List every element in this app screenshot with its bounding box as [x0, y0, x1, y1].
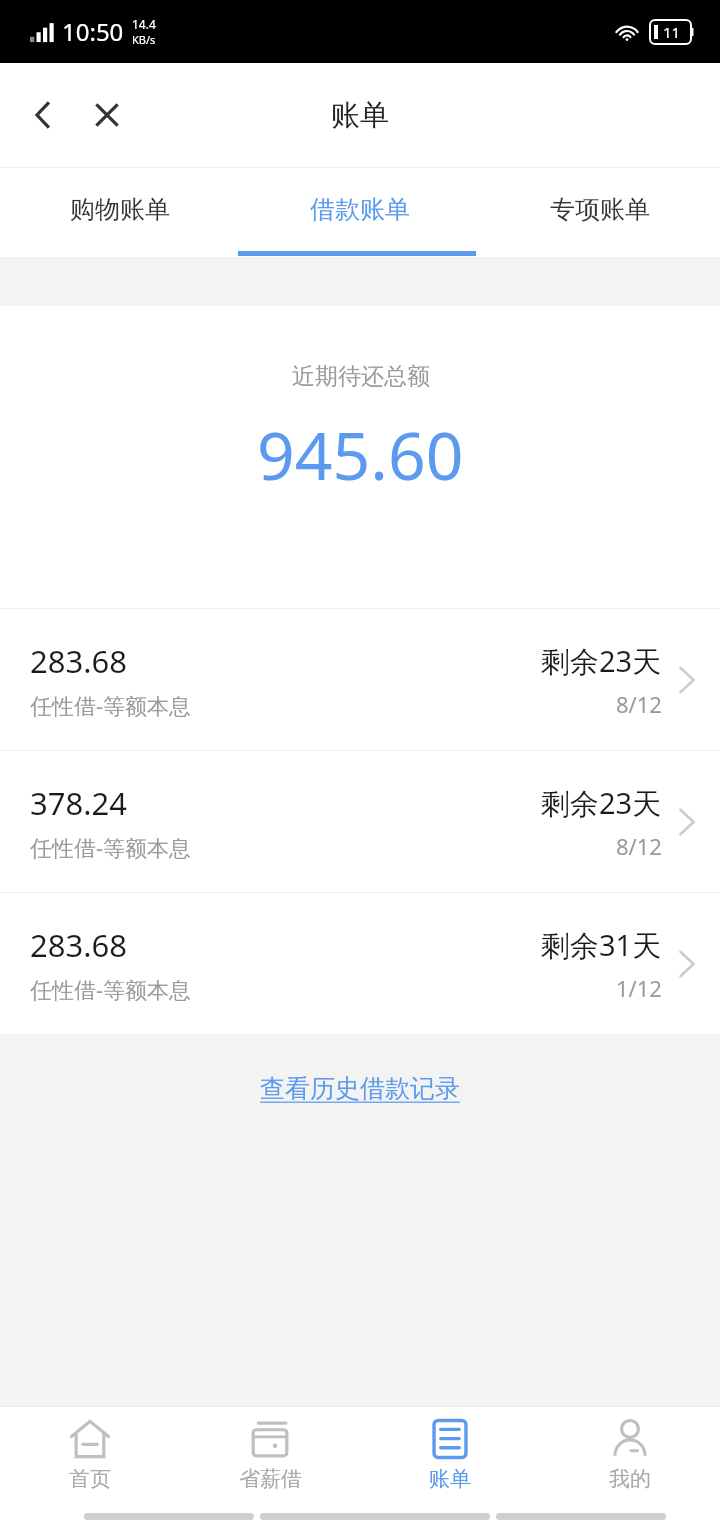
button[interactable]: Close	[78, 86, 136, 144]
staticText: 378.24	[30, 782, 127, 824]
staticText: 任性借-等额本息	[30, 974, 192, 1004]
staticText: 283.68	[30, 924, 127, 966]
staticText: 945.60	[257, 409, 464, 499]
staticText: KB/s	[132, 32, 156, 47]
staticText: 购物账单	[70, 194, 170, 225]
staticText: 账单	[331, 97, 389, 134]
staticText: 查看历史借款记录	[260, 1073, 460, 1104]
button[interactable]: 查看历史借款记录	[0, 1034, 720, 1142]
staticText: 我的	[609, 1466, 651, 1492]
staticText: 8/12	[616, 689, 662, 719]
staticText: 任性借-等额本息	[30, 832, 192, 862]
staticText: 省薪借	[239, 1466, 302, 1492]
staticText: 剩余23天	[541, 783, 662, 823]
button[interactable]: 我的	[540, 1407, 720, 1502]
staticText: 专项账单	[550, 194, 650, 225]
staticText: 剩余23天	[541, 641, 662, 681]
staticText: 11	[663, 22, 681, 42]
button[interactable]: 378.24	[0, 751, 720, 892]
staticText: 10:50	[62, 15, 124, 48]
button[interactable]: 省薪借	[180, 1407, 360, 1502]
button[interactable]: 账单	[360, 1407, 540, 1502]
staticText: 8/12	[616, 831, 662, 861]
button[interactable]: 专项账单	[480, 168, 720, 251]
staticText: 首页	[69, 1466, 111, 1492]
staticText: 1/12	[616, 973, 662, 1003]
button[interactable]: Back	[14, 86, 72, 144]
staticText: 账单	[429, 1466, 471, 1492]
button[interactable]: 283.68	[0, 609, 720, 750]
button[interactable]: 首页	[0, 1407, 180, 1502]
button[interactable]: 283.68	[0, 893, 720, 1034]
button[interactable]: 购物账单	[0, 168, 240, 251]
button[interactable]: 借款账单	[240, 168, 480, 251]
staticText: 近期待还总额	[292, 362, 430, 391]
staticText: 借款账单	[310, 194, 410, 225]
staticText: 283.68	[30, 640, 127, 682]
staticText: 剩余31天	[541, 925, 662, 965]
staticText: 14.4	[132, 16, 156, 32]
staticText: 任性借-等额本息	[30, 690, 192, 720]
